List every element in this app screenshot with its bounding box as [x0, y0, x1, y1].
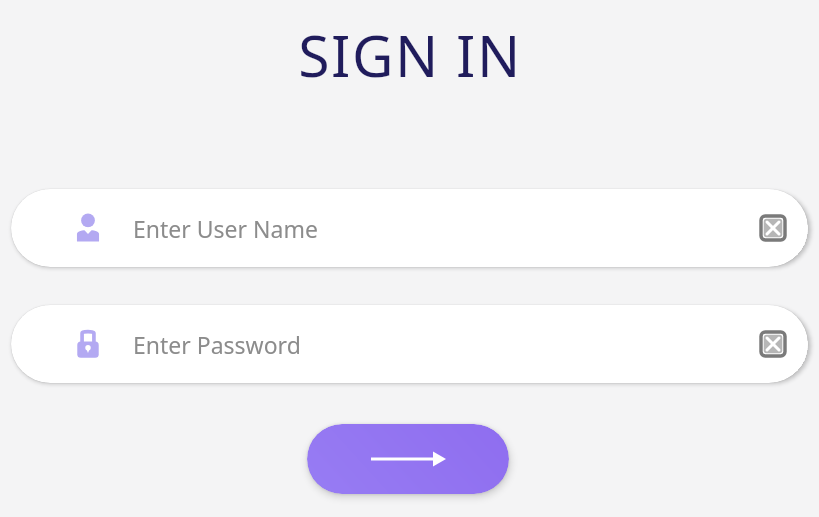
- button[interactable]: User name field: [11, 189, 808, 267]
- staticText: SIGN IN: [298, 16, 522, 94]
- staticText: Enter Password: [133, 329, 301, 360]
- button[interactable]: Sign in: [307, 424, 509, 494]
- button[interactable]: Clear: [757, 328, 789, 360]
- staticText: Enter User Name: [133, 213, 318, 244]
- button[interactable]: Clear: [757, 212, 789, 244]
- button[interactable]: Password field: [11, 305, 808, 383]
